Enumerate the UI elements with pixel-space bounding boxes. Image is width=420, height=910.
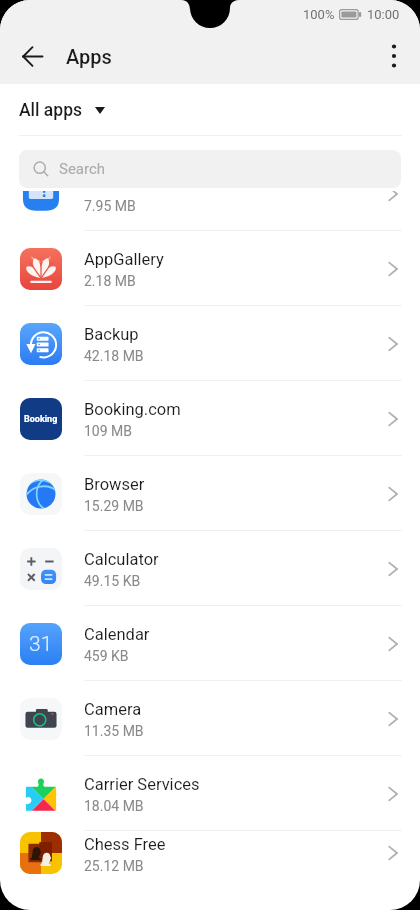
staticText: 2.18 MB bbox=[84, 273, 136, 289]
button[interactable]: Camera bbox=[0, 681, 420, 756]
staticText: 42.18 MB bbox=[84, 348, 144, 364]
button[interactable]: More options bbox=[372, 34, 416, 78]
button[interactable]: AppGallery bbox=[0, 231, 420, 306]
button[interactable]: Search bbox=[19, 150, 401, 188]
staticText: Chess Free bbox=[84, 835, 166, 854]
staticText: 18.04 MB bbox=[84, 798, 144, 814]
staticText: Camera bbox=[84, 700, 142, 719]
staticText: 7.95 MB bbox=[84, 198, 136, 214]
staticText: Calculator bbox=[84, 550, 159, 569]
button[interactable]: Files bbox=[0, 191, 420, 231]
staticText: Backup bbox=[84, 325, 139, 344]
staticText: 109 MB bbox=[84, 423, 133, 439]
staticText: 100% bbox=[303, 7, 335, 22]
staticText: Browser bbox=[84, 475, 145, 494]
staticText: 10:00 bbox=[367, 7, 400, 22]
button[interactable]: All apps bbox=[19, 100, 105, 121]
button[interactable]: Calculator bbox=[0, 531, 420, 606]
staticText: Booking bbox=[24, 414, 58, 425]
button[interactable]: 31 bbox=[0, 606, 420, 681]
staticText: Search bbox=[59, 160, 106, 178]
button[interactable]: Chess Free bbox=[0, 831, 420, 875]
staticText: Carrier Services bbox=[84, 775, 200, 794]
staticText: Apps bbox=[66, 45, 112, 68]
staticText: 11.35 MB bbox=[84, 723, 144, 739]
staticText: 15.29 MB bbox=[84, 498, 144, 514]
staticText: All apps bbox=[19, 100, 82, 121]
staticText: AppGallery bbox=[84, 250, 164, 269]
staticText: 25.12 MB bbox=[84, 858, 144, 874]
staticText: 459 KB bbox=[84, 648, 129, 664]
button[interactable]: Carrier Services bbox=[0, 756, 420, 831]
button[interactable]: Browser bbox=[0, 456, 420, 531]
staticText: 49.15 KB bbox=[84, 573, 141, 589]
button[interactable]: Backup bbox=[0, 306, 420, 381]
button[interactable]: Booking bbox=[0, 381, 420, 456]
staticText: Booking.com bbox=[84, 400, 181, 419]
staticText: 31 bbox=[29, 632, 53, 657]
staticText: Calendar bbox=[84, 625, 150, 644]
button[interactable]: Back bbox=[12, 36, 52, 76]
